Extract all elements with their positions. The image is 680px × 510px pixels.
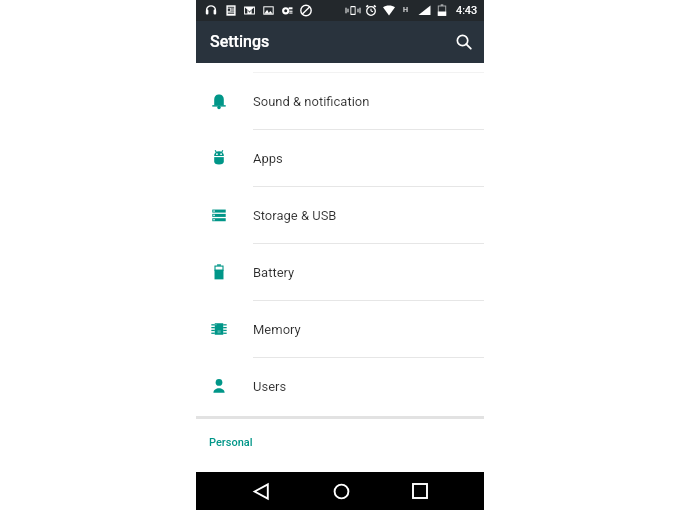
button[interactable]: Memory xyxy=(196,301,484,358)
staticText: 4:43 xyxy=(456,4,478,17)
button[interactable]: Home xyxy=(322,472,360,510)
button[interactable]: Storage & USB xyxy=(196,187,484,244)
staticText: Sound & notification xyxy=(253,94,370,109)
staticText: Battery xyxy=(253,265,295,280)
button[interactable]: Battery xyxy=(196,244,484,301)
staticText: Settings xyxy=(210,32,270,51)
staticText: Personal xyxy=(209,436,253,449)
button[interactable]: Back xyxy=(242,472,280,510)
staticText: H xyxy=(403,6,408,14)
staticText: Apps xyxy=(253,151,283,166)
staticText: Memory xyxy=(253,322,301,337)
button[interactable]: Recents xyxy=(401,472,439,510)
button[interactable]: Apps xyxy=(196,130,484,187)
button[interactable]: Sound & notification xyxy=(196,73,484,130)
button[interactable]: Users xyxy=(196,358,484,415)
staticText: Storage & USB xyxy=(253,208,337,223)
button[interactable]: Search xyxy=(450,28,478,56)
staticText: Users xyxy=(253,379,287,394)
